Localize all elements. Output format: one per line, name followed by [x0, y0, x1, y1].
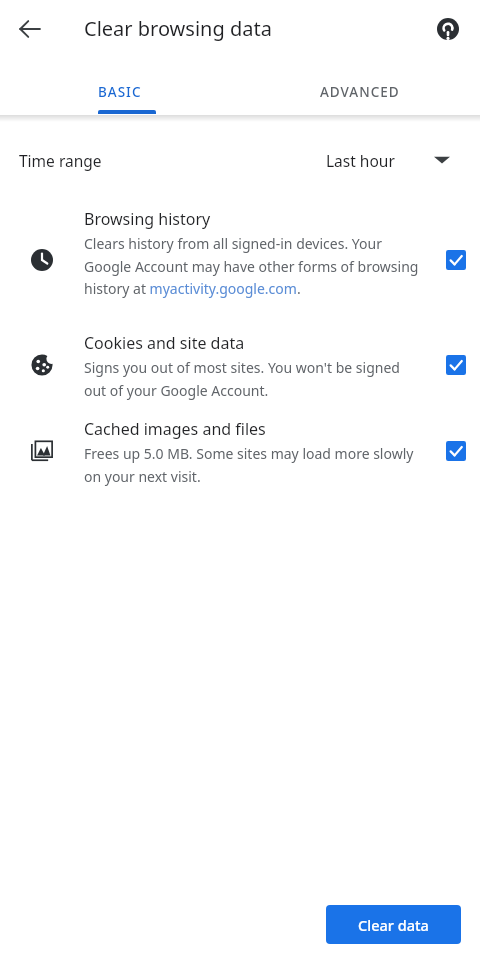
staticText: Cookies and site data — [84, 332, 245, 354]
staticText: Signs you out of most sites. You won't b… — [84, 358, 419, 400]
button[interactable]: Cached images and files checkbox — [0, 408, 480, 494]
staticText: Cached images and files — [84, 418, 266, 440]
staticText: ADVANCED — [320, 83, 400, 101]
button[interactable]: BASIC — [0, 58, 240, 115]
staticText: Browsing history — [84, 208, 211, 230]
button[interactable]: Clear data — [326, 905, 461, 944]
button[interactable]: Help — [428, 9, 468, 49]
button[interactable]: Browsing history checkbox — [0, 198, 480, 322]
button[interactable]: Time range — [0, 122, 480, 198]
staticText: Clears history from all signed-in device… — [84, 234, 419, 298]
staticText: Last hour — [326, 150, 395, 171]
staticText: Clear data — [358, 915, 429, 935]
button[interactable]: ADVANCED — [240, 58, 480, 115]
staticText: BASIC — [98, 83, 142, 101]
staticText: Time range — [19, 150, 102, 171]
button[interactable]: Back — [10, 9, 50, 49]
staticText: Clear browsing data — [84, 15, 272, 42]
staticText: Frees up 5.0 MB. Some sites may load mor… — [84, 444, 419, 486]
button[interactable]: Cookies and site data checkbox — [0, 322, 480, 408]
